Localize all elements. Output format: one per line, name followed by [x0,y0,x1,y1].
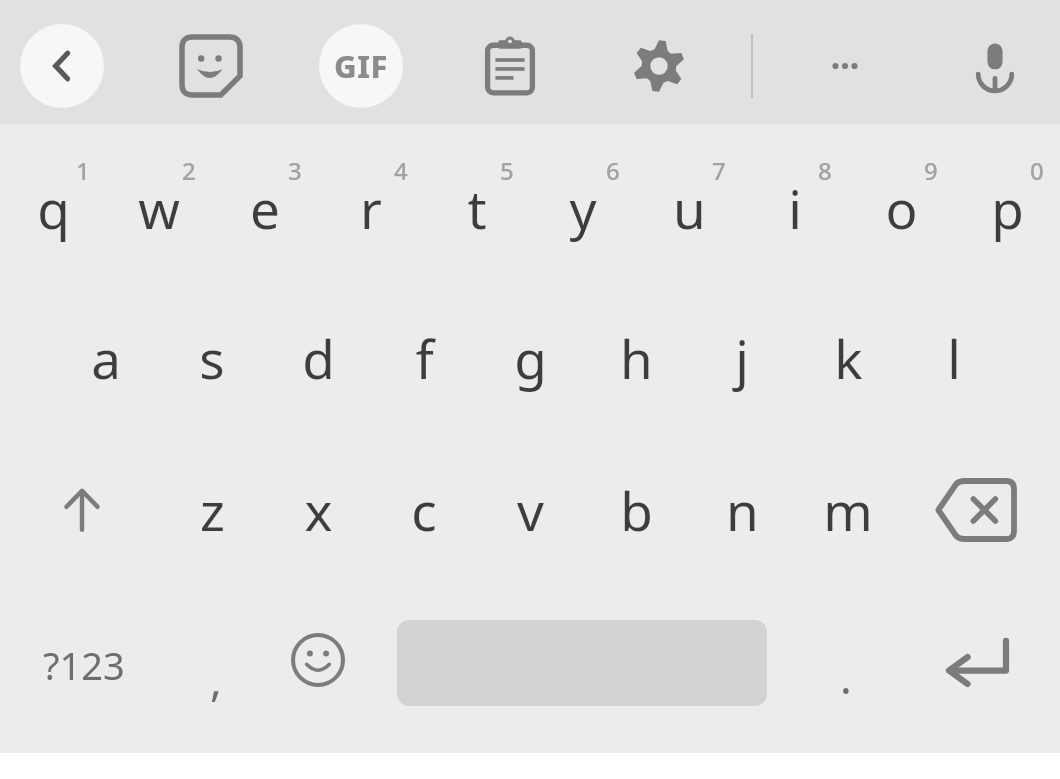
button[interactable]: Back [16,20,108,112]
button[interactable]: j [689,283,795,433]
button[interactable]: c [371,435,477,585]
staticText: r [360,172,382,244]
button[interactable]: Stickers [168,23,254,109]
staticText: 4 [394,154,408,187]
staticText: l [947,322,961,394]
button[interactable]: s [159,283,265,433]
staticText: 3 [288,154,302,187]
button[interactable]: GIF [315,20,407,112]
button[interactable]: a [53,283,159,433]
button[interactable]: v [477,435,583,585]
button[interactable]: , [160,600,272,730]
staticText: GIF [334,45,388,87]
staticText: v [517,474,544,546]
button[interactable]: g [477,283,583,433]
button[interactable]: o [848,133,954,283]
button[interactable]: h [583,283,689,433]
button[interactable]: Enter [919,595,1031,725]
staticText: s [199,322,225,394]
staticText: b [620,474,653,546]
staticText: c [411,474,437,546]
button[interactable]: q [0,133,106,283]
button[interactable]: b [583,435,689,585]
staticText: e [250,172,280,244]
staticText: w [138,172,180,244]
staticText: 7 [712,154,726,187]
staticText: g [514,322,547,394]
button[interactable]: Backspace [922,440,1028,580]
button[interactable]: m [795,435,901,585]
button[interactable]: More options [802,23,888,109]
button[interactable]: i [742,133,848,283]
staticText: 1 [76,154,90,187]
button[interactable]: k [795,283,901,433]
staticText: m [823,474,873,546]
button[interactable]: z [159,435,265,585]
staticText: x [304,474,333,546]
button[interactable]: l [901,283,1007,433]
staticText: . [840,647,852,707]
button[interactable]: r [318,133,424,283]
staticText: n [726,474,759,546]
staticText: 6 [606,154,620,187]
button[interactable]: Voice input [952,23,1038,109]
staticText: 9 [924,154,938,187]
staticText: 8 [818,154,832,187]
staticText: p [991,172,1024,244]
staticText: a [91,322,121,394]
button[interactable]: n [689,435,795,585]
button[interactable]: e [212,133,318,283]
button[interactable]: ?123 [28,600,140,730]
staticText: y [569,172,597,244]
staticText: j [735,322,749,394]
staticText: , [210,649,222,709]
button[interactable]: y [530,133,636,283]
button[interactable]: p [954,133,1060,283]
staticText: o [885,172,918,244]
button[interactable]: u [636,133,742,283]
staticText: 0 [1030,154,1044,187]
staticText: f [415,322,434,394]
staticText: t [467,172,487,244]
staticText: k [834,322,863,394]
button[interactable]: Settings [616,23,702,109]
staticText: d [302,322,335,394]
button[interactable]: w [106,133,212,283]
staticText: h [620,322,653,394]
staticText: 2 [182,154,196,187]
staticText: u [673,172,706,244]
staticText: z [200,474,225,546]
staticText: i [788,172,802,244]
button[interactable]: t [424,133,530,283]
button[interactable]: Emoji [265,595,371,725]
button[interactable]: Shift [29,440,135,580]
staticText: q [37,172,70,244]
button[interactable]: . [790,600,902,730]
button[interactable]: Clipboard [467,23,553,109]
button[interactable]: f [371,283,477,433]
staticText: ?123 [43,639,125,691]
staticText: 5 [500,154,514,187]
button[interactable]: x [265,435,371,585]
button[interactable]: d [265,283,371,433]
